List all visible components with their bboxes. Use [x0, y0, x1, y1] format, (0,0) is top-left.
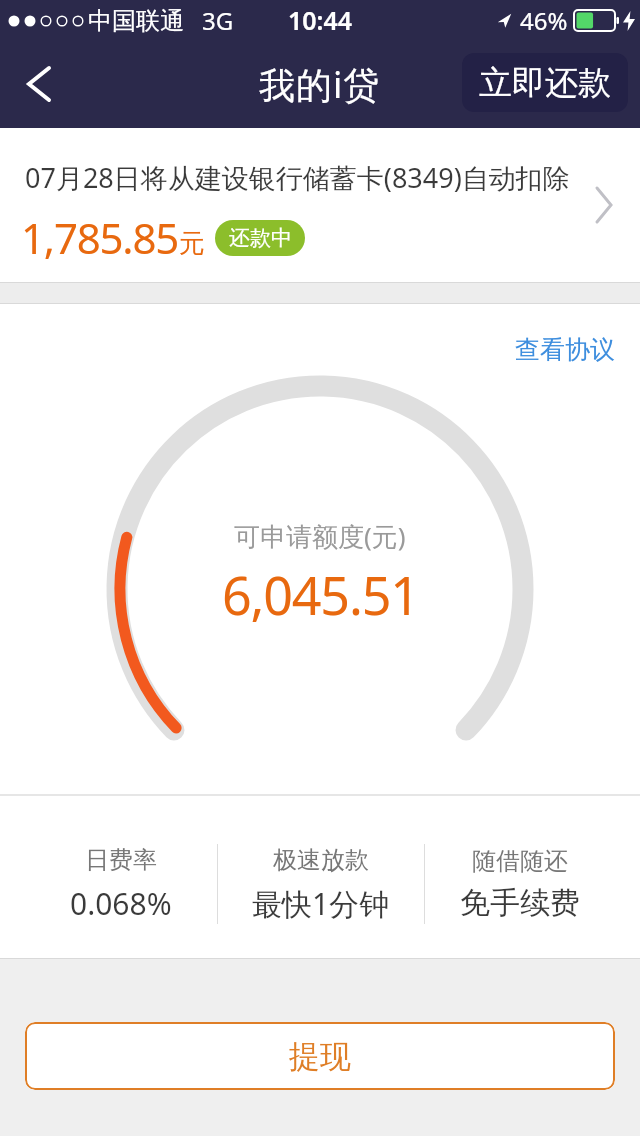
staticText: 元 [179, 227, 205, 260]
staticText: 10:44 [288, 3, 353, 37]
staticText: 提现 [289, 1037, 351, 1076]
staticText: 1,785.85 [21, 209, 179, 266]
staticText: 46% [520, 4, 568, 37]
button[interactable]: 查看协议 [515, 334, 615, 365]
staticText: 0.068% [70, 883, 172, 924]
staticText: 随借随还 [472, 846, 568, 876]
staticText: 6,045.51 [222, 559, 419, 630]
staticText: 3G [202, 4, 234, 37]
staticText: 日费率 [85, 845, 157, 875]
staticText: 我的i贷 [259, 60, 381, 109]
staticText: 免手续费 [460, 884, 580, 922]
button[interactable]: 07月28日将从建设银行储蓄卡(8349)自动扣除 [0, 128, 640, 282]
staticText: 立即还款 [479, 62, 611, 104]
staticText: 还款中 [229, 225, 292, 251]
staticText: 07月28日将从建设银行储蓄卡(8349)自动扣除 [25, 159, 570, 196]
staticText: 极速放款 [273, 845, 369, 875]
button[interactable] [8, 40, 68, 128]
staticText: 最快1分钟 [252, 883, 390, 924]
staticText: 可申请额度(元) [234, 518, 406, 554]
staticText: 中国联通 [88, 6, 184, 36]
button[interactable]: 立即还款 [462, 53, 628, 112]
button[interactable]: 提现 [25, 1022, 615, 1090]
